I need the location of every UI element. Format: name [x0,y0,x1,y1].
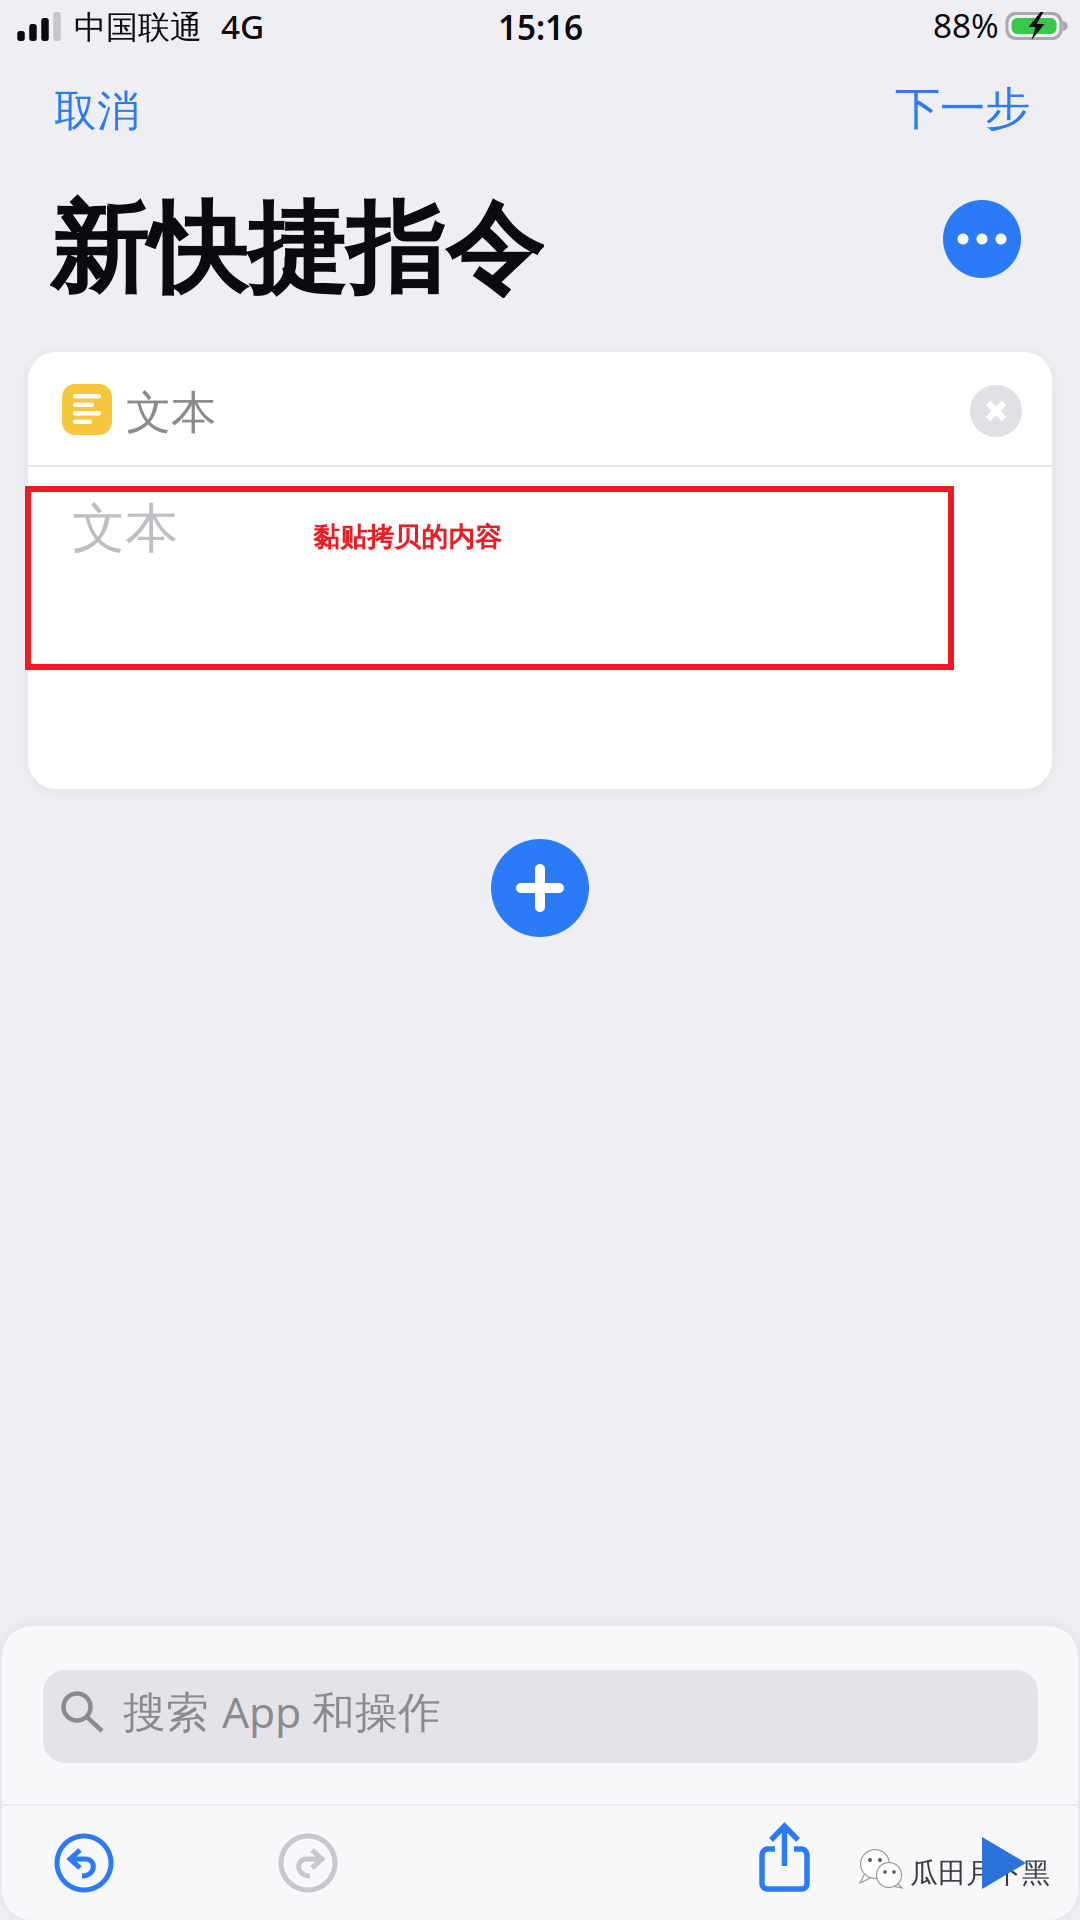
staticText: 黏贴拷贝的内容 [313,521,502,554]
button[interactable]: Redo [261,1816,355,1910]
staticText: 取消 [54,85,140,137]
staticText: 搜索 App 和操作 [123,1683,441,1740]
button[interactable]: 取消 [32,69,162,153]
staticText: 中国联通 [74,8,202,47]
button[interactable]: 文本 [28,352,1052,465]
staticText: 88% [933,3,999,47]
button[interactable]: 下一步 [873,65,1052,153]
staticText: 新快捷指令 [49,189,544,310]
button[interactable]: Share [743,1807,826,1908]
staticText: 瓜田月下黑 [910,1856,1050,1890]
button[interactable]: Remove action [970,385,1022,437]
staticText: 15:16 [498,5,583,49]
button[interactable]: Text field [28,467,1052,787]
staticText: 下一步 [895,81,1030,137]
staticText: 文本 [126,385,216,441]
button[interactable]: More options [943,200,1021,278]
button[interactable]: Undo [37,1816,131,1910]
button[interactable]: Add action [491,839,589,937]
staticText: 4G [221,4,264,48]
staticText: 文本 [72,496,178,561]
button[interactable]: 搜索 App 和操作 [43,1670,1038,1763]
